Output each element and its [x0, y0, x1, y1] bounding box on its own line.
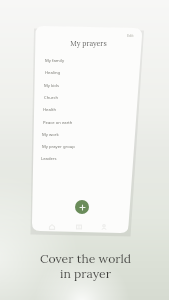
staticText: My family: [45, 58, 65, 64]
staticText: Peace on earth: [43, 120, 73, 126]
button[interactable]: Leaders: [37, 153, 123, 165]
staticText: in prayer: [1, 266, 169, 282]
staticText: Health: [43, 107, 56, 113]
button[interactable]: Profile: [93, 220, 115, 234]
staticText: My kids: [44, 83, 59, 89]
staticText: My prayer group: [42, 144, 75, 150]
button[interactable]: Health: [39, 104, 125, 116]
staticText: Cover the world: [1, 251, 169, 267]
button[interactable]: Healing: [41, 67, 127, 79]
button[interactable]: Prayers: [68, 220, 90, 234]
button[interactable]: My prayer group: [38, 141, 124, 153]
button[interactable]: My family: [41, 55, 127, 67]
button[interactable]: My work: [38, 129, 124, 141]
staticText: Leaders: [41, 156, 57, 162]
staticText: My prayers: [36, 39, 141, 48]
button[interactable]: Church: [40, 92, 126, 104]
button[interactable]: Edit: [127, 33, 134, 38]
button[interactable]: Add prayer: [75, 200, 89, 214]
staticText: Healing: [45, 70, 61, 76]
button[interactable]: Home: [41, 220, 63, 234]
button[interactable]: Peace on earth: [39, 117, 125, 129]
staticText: Church: [44, 95, 59, 101]
staticText: My work: [42, 132, 59, 138]
button[interactable]: My kids: [40, 80, 126, 92]
